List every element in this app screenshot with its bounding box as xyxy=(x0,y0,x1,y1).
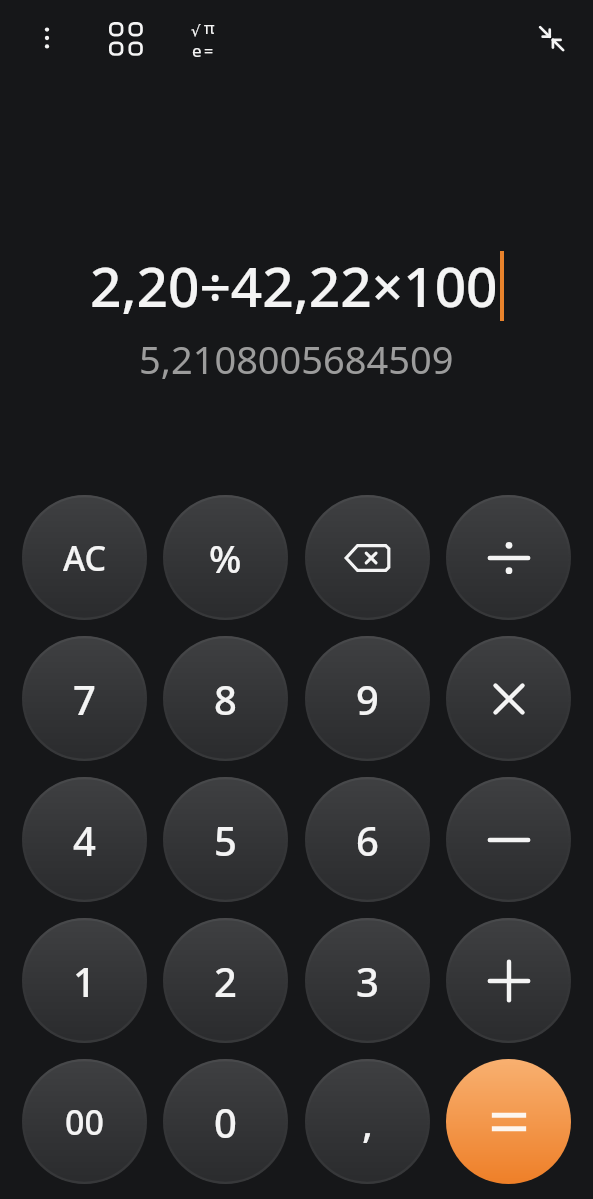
button[interactable]: 8 xyxy=(163,636,288,761)
button[interactable]: Divide xyxy=(446,495,571,620)
button[interactable]: , xyxy=(305,1059,430,1184)
button[interactable]: Backspace xyxy=(305,495,430,620)
button[interactable]: 00 xyxy=(22,1059,147,1184)
staticText: % xyxy=(209,532,242,584)
button[interactable]: Scientific mode xyxy=(172,8,234,70)
staticText: 4 xyxy=(73,813,96,867)
staticText: 8 xyxy=(214,672,237,726)
staticText: 3 xyxy=(356,954,379,1008)
button[interactable]: Collapse xyxy=(523,10,579,66)
button[interactable]: Keypad layout xyxy=(99,12,155,68)
button[interactable]: Multiply xyxy=(446,636,571,761)
button[interactable]: 9 xyxy=(305,636,430,761)
button[interactable]: Plus xyxy=(446,918,571,1043)
staticText: π xyxy=(204,17,215,39)
staticText: 7 xyxy=(73,672,96,726)
staticText: 1 xyxy=(73,954,96,1008)
button[interactable]: 5 xyxy=(163,777,288,902)
staticText: 6 xyxy=(356,813,379,867)
button[interactable]: 3 xyxy=(305,918,430,1043)
staticText: , xyxy=(362,1095,373,1149)
staticText: 5 xyxy=(214,813,237,867)
staticText: AC xyxy=(63,535,107,581)
button[interactable]: 0 xyxy=(163,1059,288,1184)
staticText: 5,2108005684509 xyxy=(139,333,454,385)
button[interactable]: 1 xyxy=(22,918,147,1043)
staticText: 2 xyxy=(214,954,237,1008)
staticText: 9 xyxy=(356,672,379,726)
button[interactable]: AC xyxy=(22,495,147,620)
button[interactable]: More options xyxy=(21,12,73,64)
button[interactable]: 2 xyxy=(163,918,288,1043)
staticText: = xyxy=(204,40,214,62)
button[interactable]: 4 xyxy=(22,777,147,902)
button[interactable]: Minus xyxy=(446,777,571,902)
button[interactable]: 7 xyxy=(22,636,147,761)
button[interactable]: % xyxy=(163,495,288,620)
staticText: 0 xyxy=(214,1095,237,1149)
button[interactable]: Equals xyxy=(446,1059,571,1184)
staticText: 2,20÷42,22×100 xyxy=(90,248,498,323)
staticText: 00 xyxy=(65,1099,104,1145)
staticText: e xyxy=(192,39,202,62)
button[interactable]: 6 xyxy=(305,777,430,902)
staticText: √ xyxy=(191,22,201,39)
